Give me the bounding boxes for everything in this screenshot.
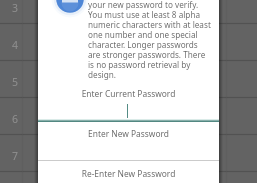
staticText: 6 xyxy=(12,112,19,126)
button[interactable]: Enter New Password xyxy=(38,126,219,161)
button[interactable]: Enter Current Password xyxy=(38,86,219,122)
staticText: 7 xyxy=(12,149,19,163)
staticText: 3 xyxy=(12,1,19,15)
staticText: 4 xyxy=(12,38,19,52)
button[interactable]: Re-Enter New Password xyxy=(38,166,219,183)
staticText: 5 xyxy=(12,75,19,89)
button[interactable]: Information xyxy=(51,0,89,18)
staticText: your new password to verify. You must us… xyxy=(88,0,218,80)
staticText: Enter Current Password xyxy=(38,88,219,99)
staticText: Re-Enter New Password xyxy=(38,168,219,179)
staticText: Enter New Password xyxy=(38,128,219,139)
